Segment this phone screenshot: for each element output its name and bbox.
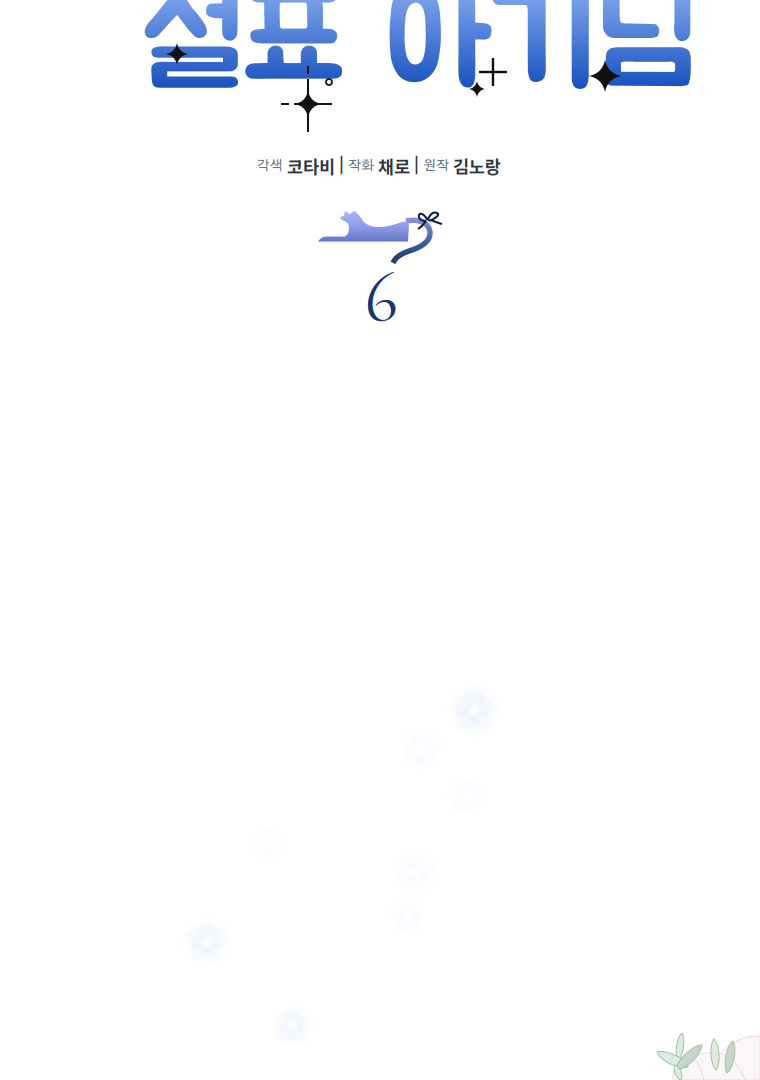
staticText: 원작 <box>423 159 449 173</box>
staticText: 김노랑 <box>449 153 501 179</box>
staticText: 채로 <box>374 153 410 179</box>
staticText: 각색 <box>257 159 283 173</box>
staticText: 6 <box>364 253 397 341</box>
staticText: | <box>335 157 348 175</box>
staticText: 코타비 <box>283 153 335 179</box>
staticText: 작화 <box>348 159 374 173</box>
staticText: | <box>410 157 423 175</box>
